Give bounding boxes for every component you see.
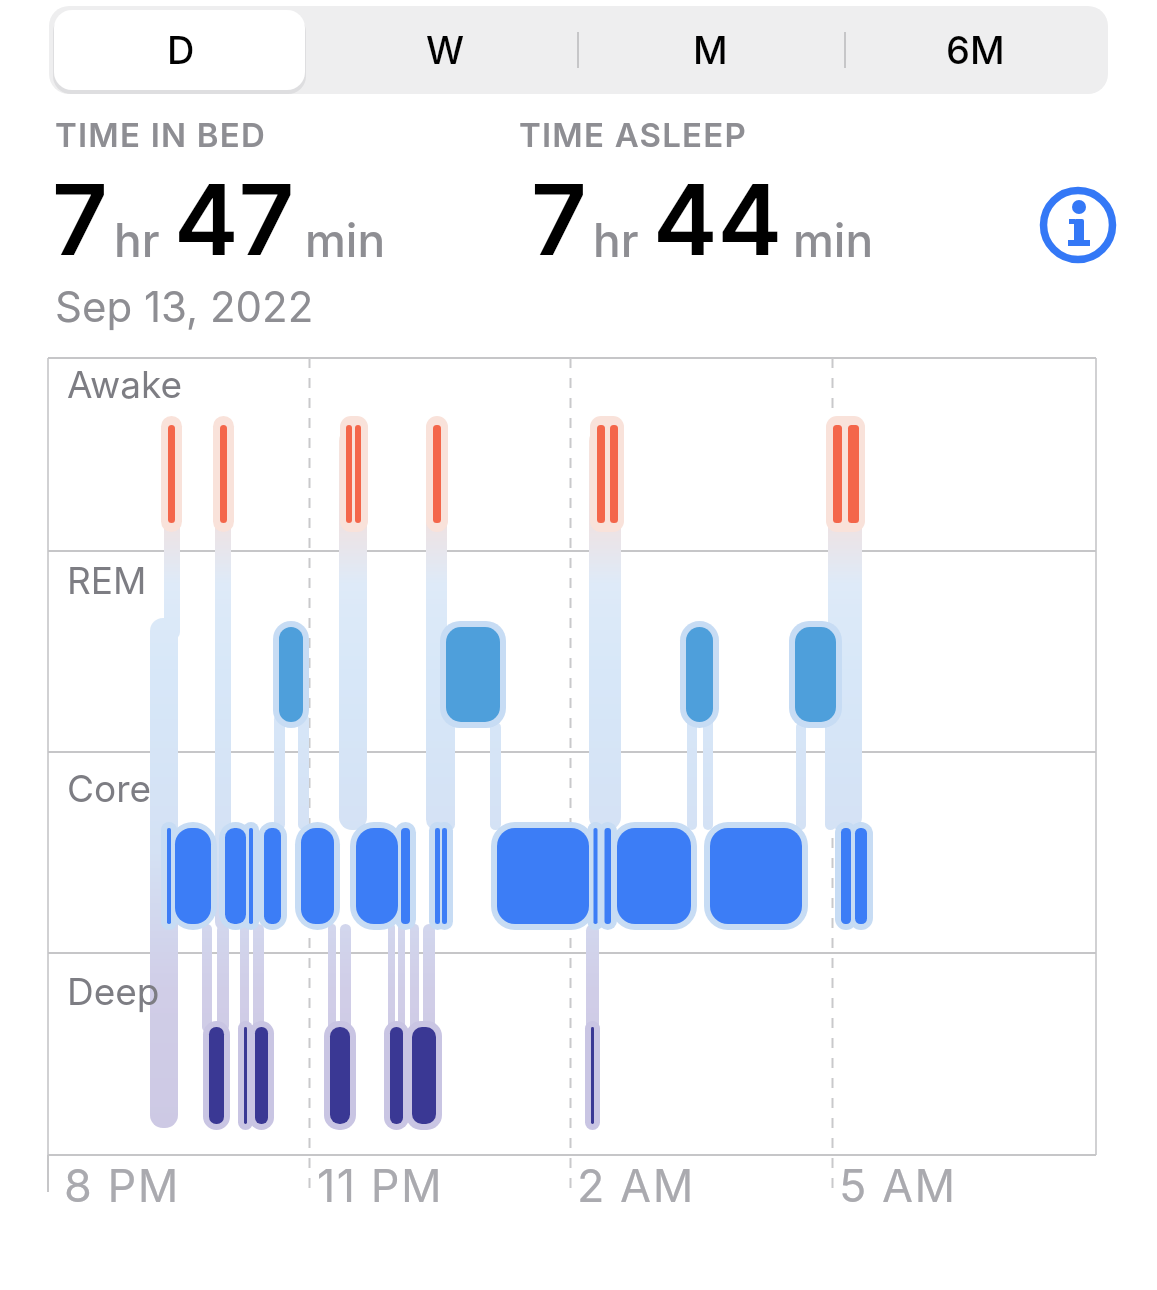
staticText: TIME ASLEEP bbox=[519, 115, 747, 155]
staticText: TIME IN BED bbox=[55, 115, 266, 155]
button[interactable]: W bbox=[313, 6, 578, 94]
staticText: min bbox=[793, 212, 874, 268]
staticText: 8 PM bbox=[64, 1158, 180, 1212]
staticText: 7 bbox=[531, 161, 587, 278]
staticText: 44 bbox=[653, 161, 783, 278]
staticText: Sep 13, 2022 bbox=[55, 281, 314, 332]
staticText: hr bbox=[593, 212, 639, 268]
button[interactable] bbox=[1039, 186, 1117, 264]
staticText: M bbox=[693, 27, 728, 73]
staticText: 2 AM bbox=[577, 1158, 695, 1212]
staticText: 11 PM bbox=[317, 1158, 444, 1212]
staticText: D bbox=[167, 27, 195, 73]
staticText: W bbox=[426, 27, 465, 73]
staticText: Deep bbox=[67, 969, 160, 1014]
staticText: 47 bbox=[174, 161, 295, 278]
staticText: 6M bbox=[946, 27, 1005, 73]
button[interactable]: M bbox=[578, 6, 843, 94]
staticText: 7 bbox=[52, 161, 108, 278]
staticText: REM bbox=[67, 558, 147, 603]
staticText: 5 AM bbox=[839, 1158, 957, 1212]
staticText: hr bbox=[114, 212, 160, 268]
button[interactable]: D bbox=[49, 6, 313, 94]
staticText: min bbox=[305, 212, 386, 268]
staticText: Awake bbox=[67, 362, 183, 407]
staticText: Core bbox=[67, 766, 152, 811]
button[interactable]: 6M bbox=[843, 6, 1108, 94]
